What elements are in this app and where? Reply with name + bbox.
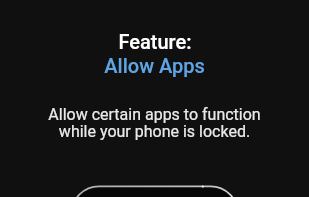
staticText: Allow certain apps to function while you… bbox=[48, 105, 261, 141]
staticText: Allow Apps bbox=[104, 54, 205, 77]
staticText: Feature: bbox=[118, 30, 192, 53]
other: Phone preview illustration bbox=[0, 0, 309, 197]
